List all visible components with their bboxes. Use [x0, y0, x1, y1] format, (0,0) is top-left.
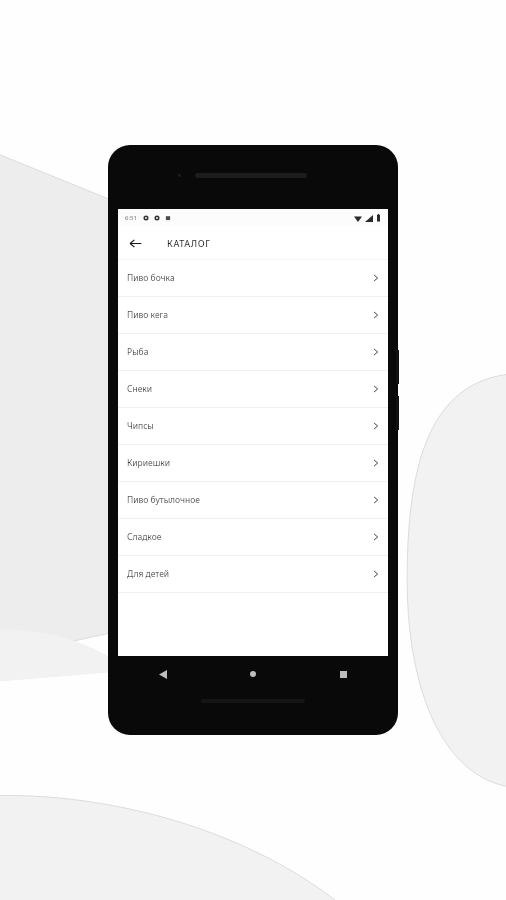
staticText: Пиво кега [127, 309, 373, 321]
button[interactable]: Пиво бочка [118, 260, 388, 296]
button[interactable]: Главный экран [208, 656, 298, 692]
button[interactable]: Чипсы [118, 408, 388, 444]
staticText: Кириешки [127, 457, 373, 469]
button[interactable]: Последние приложения [298, 656, 388, 692]
staticText: КАТАЛОГ [167, 237, 211, 249]
staticText: Чипсы [127, 420, 373, 432]
button[interactable]: Пиво бутылочное [118, 482, 388, 518]
staticText: Сладкое [127, 531, 373, 543]
button[interactable]: Для детей [118, 556, 388, 592]
staticText: 6:51 [125, 214, 137, 222]
staticText: Рыба [127, 346, 373, 358]
staticText: Для детей [127, 568, 373, 580]
staticText: Снеки [127, 383, 373, 395]
button[interactable]: Снеки [118, 371, 388, 407]
button[interactable]: Пиво кега [118, 297, 388, 333]
button[interactable]: Кириешки [118, 445, 388, 481]
button[interactable]: Назад [118, 226, 152, 260]
button[interactable]: Назад [118, 656, 208, 692]
button[interactable]: Рыба [118, 334, 388, 370]
staticText: Пиво бутылочное [127, 494, 373, 506]
button[interactable]: Сладкое [118, 519, 388, 555]
staticText: Пиво бочка [127, 272, 373, 284]
